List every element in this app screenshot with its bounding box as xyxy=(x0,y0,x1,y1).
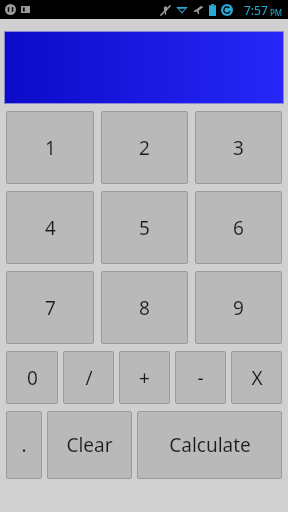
staticText: + xyxy=(139,365,150,391)
button[interactable]: . xyxy=(6,411,42,479)
button[interactable]: + xyxy=(119,351,170,404)
staticText: 5 xyxy=(139,215,150,241)
button[interactable]: 2 xyxy=(101,111,188,184)
button[interactable]: 4 xyxy=(6,191,94,264)
button[interactable]: 0 xyxy=(6,351,58,404)
button[interactable] xyxy=(4,31,284,104)
button[interactable]: - xyxy=(175,351,226,404)
button[interactable]: 8 xyxy=(101,271,188,344)
staticText: Clear xyxy=(66,432,113,458)
button[interactable]: 5 xyxy=(101,191,188,264)
staticText: X xyxy=(251,365,263,391)
staticText: / xyxy=(85,365,93,391)
button[interactable]: 3 xyxy=(195,111,282,184)
button[interactable]: 9 xyxy=(195,271,282,344)
button[interactable]: Calculate xyxy=(137,411,282,479)
staticText: 3 xyxy=(233,135,244,161)
button[interactable]: 1 xyxy=(6,111,94,184)
button[interactable]: / xyxy=(63,351,114,404)
staticText: 9 xyxy=(233,295,244,321)
button[interactable]: X xyxy=(231,351,282,404)
staticText: 6 xyxy=(233,215,244,241)
staticText: Calculate xyxy=(169,432,251,458)
staticText: . xyxy=(21,432,27,458)
staticText: 1 xyxy=(45,135,56,161)
staticText: 4 xyxy=(45,215,56,241)
button[interactable]: 7 xyxy=(6,271,94,344)
staticText: PM xyxy=(270,7,283,18)
staticText: 7 xyxy=(45,295,56,321)
staticText: 8 xyxy=(139,295,150,321)
staticText: 7:57 xyxy=(244,2,268,18)
staticText: 2 xyxy=(139,135,150,161)
button[interactable]: Clear xyxy=(47,411,132,479)
button[interactable]: 6 xyxy=(195,191,282,264)
staticText: 0 xyxy=(27,365,38,391)
staticText: - xyxy=(197,365,204,391)
